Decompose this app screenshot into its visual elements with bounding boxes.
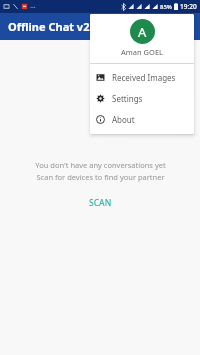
button[interactable]: A: [90, 14, 194, 63]
staticText: Aman GOEL: [121, 47, 164, 57]
button[interactable]: Settings: [90, 88, 194, 109]
staticText: 19:20: [180, 2, 197, 11]
staticText: Scan for devices to find your partner: [36, 172, 165, 182]
staticText: SCAN: [89, 197, 112, 209]
staticText: Offline Chat v2.0: [8, 19, 99, 34]
staticText: A: [138, 23, 147, 41]
staticText: 85%: [160, 3, 172, 11]
staticText: About: [112, 114, 135, 125]
button[interactable]: Received Images: [90, 67, 194, 88]
staticText: Received Images: [112, 72, 176, 83]
staticText: You don't have any conversations yet: [35, 160, 166, 170]
button[interactable]: About: [90, 109, 194, 130]
staticText: Settings: [112, 93, 143, 104]
button[interactable]: SCAN: [81, 194, 120, 212]
